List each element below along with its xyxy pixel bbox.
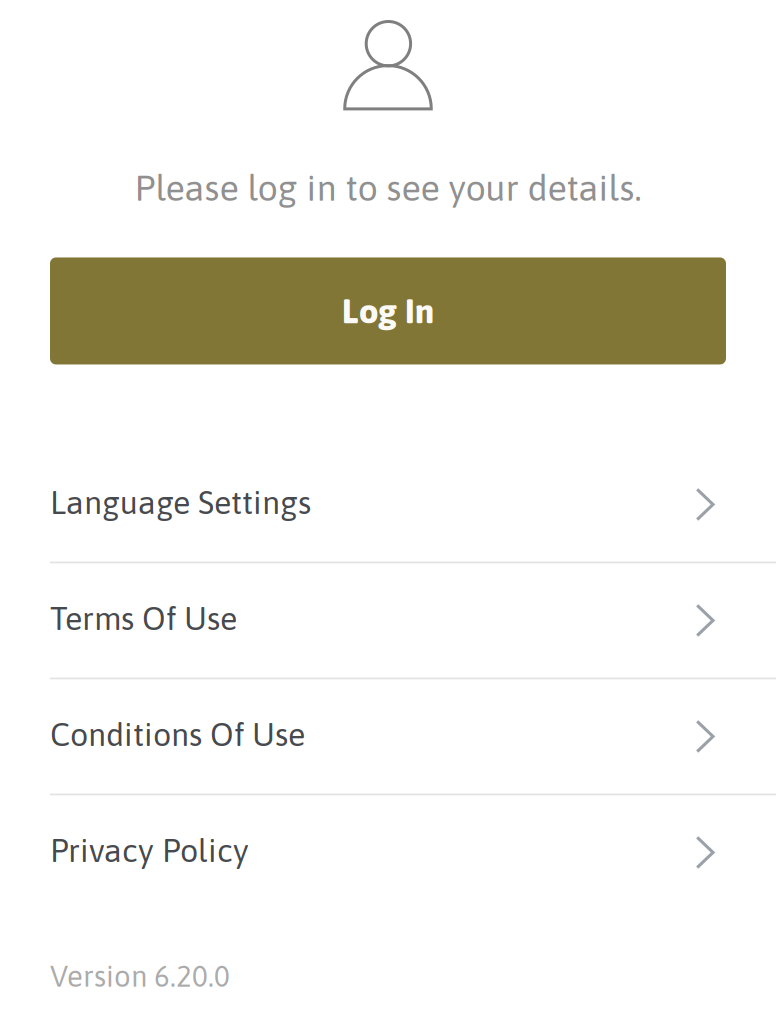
- button[interactable]: Terms Of Use: [0, 563, 776, 677]
- staticText: Log In: [342, 291, 434, 330]
- staticText: Privacy Policy: [50, 832, 249, 869]
- staticText: Please log in to see your details.: [134, 167, 641, 208]
- staticText: Language Settings: [50, 484, 311, 521]
- staticText: Version 6.20.0: [50, 959, 230, 993]
- button[interactable]: Conditions Of Use: [0, 679, 776, 793]
- staticText: Terms Of Use: [50, 600, 237, 637]
- staticText: Conditions Of Use: [50, 716, 305, 753]
- button[interactable]: Log In: [50, 257, 726, 364]
- button[interactable]: Language Settings: [0, 447, 776, 561]
- button[interactable]: Privacy Policy: [0, 795, 776, 909]
